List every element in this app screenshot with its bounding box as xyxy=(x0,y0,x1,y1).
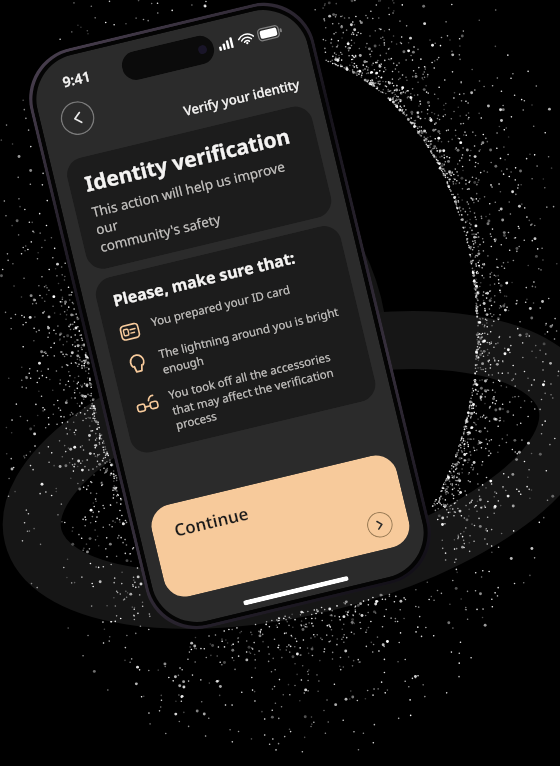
staticText: The lightning around you is bright enoug… xyxy=(157,302,349,377)
staticText: Continue xyxy=(172,501,251,542)
button[interactable]: Back xyxy=(57,98,98,139)
button[interactable]: You prepared your ID card xyxy=(116,270,339,344)
staticText: 9:41 xyxy=(61,66,92,91)
button[interactable]: Continue xyxy=(364,509,396,540)
staticText: This action will help us improve our com… xyxy=(90,152,316,256)
staticText: You prepared your ID card xyxy=(149,281,292,330)
button[interactable]: The lightning around you is bright enoug… xyxy=(124,302,349,385)
button[interactable]: You took off all the accessories that ma… xyxy=(134,343,362,440)
staticText: You took off all the accessories that ma… xyxy=(167,343,362,432)
staticText: Verify your identity xyxy=(182,75,302,120)
staticText: Please, make sure that: xyxy=(111,246,298,311)
staticText: Identity verification xyxy=(82,121,293,199)
button[interactable]: Continue xyxy=(147,451,414,601)
